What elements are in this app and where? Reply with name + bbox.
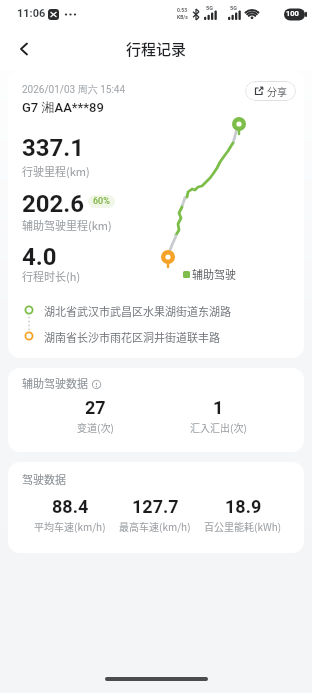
staticText: 18.9	[225, 496, 262, 517]
staticText: 辅助驾驶	[192, 266, 236, 282]
staticText: 337.1	[22, 134, 85, 162]
staticText: 最高车速(km/h)	[119, 519, 191, 533]
staticText: 行程时长(h)	[22, 268, 81, 284]
staticText: 100	[286, 9, 299, 18]
staticText: 2026/01/03 周六 15:44	[22, 83, 126, 96]
staticText: G7 湘AA***89	[22, 99, 104, 115]
staticText: 驾驶数据	[22, 471, 66, 487]
staticText: 行程记录	[126, 38, 187, 60]
staticText: 辅助驾驶里程(km)	[22, 217, 112, 233]
staticText: 百公里能耗(kWh)	[204, 519, 282, 533]
staticText: 变道(次)	[77, 420, 114, 434]
staticText: 1	[213, 397, 224, 418]
staticText: 辅助驾驶数据	[22, 375, 88, 391]
staticText: 5G	[230, 5, 237, 11]
staticText: 11:06	[17, 7, 46, 20]
staticText: KB/s	[177, 14, 188, 20]
staticText: 88.4	[52, 496, 89, 517]
staticText: 27	[85, 397, 106, 418]
staticText: 分享	[267, 84, 287, 98]
staticText: 平均车速(km/h)	[34, 519, 106, 533]
button[interactable]	[10, 35, 38, 63]
staticText: 5G	[206, 5, 213, 11]
button[interactable]: 分享	[245, 81, 296, 101]
staticText: 4.0	[22, 243, 57, 271]
staticText: 湖北省武汉市武昌区水果湖街道东湖路	[44, 303, 231, 319]
staticText: 湖南省长沙市雨花区洞井街道联丰路	[44, 329, 220, 345]
staticText: 行驶里程(km)	[22, 163, 90, 179]
staticText: 0.53	[177, 7, 188, 13]
staticText: 127.7	[132, 496, 179, 517]
staticText: 60%	[93, 196, 110, 207]
staticText: 汇入汇出(次)	[190, 420, 247, 434]
staticText: 202.6	[22, 190, 85, 218]
